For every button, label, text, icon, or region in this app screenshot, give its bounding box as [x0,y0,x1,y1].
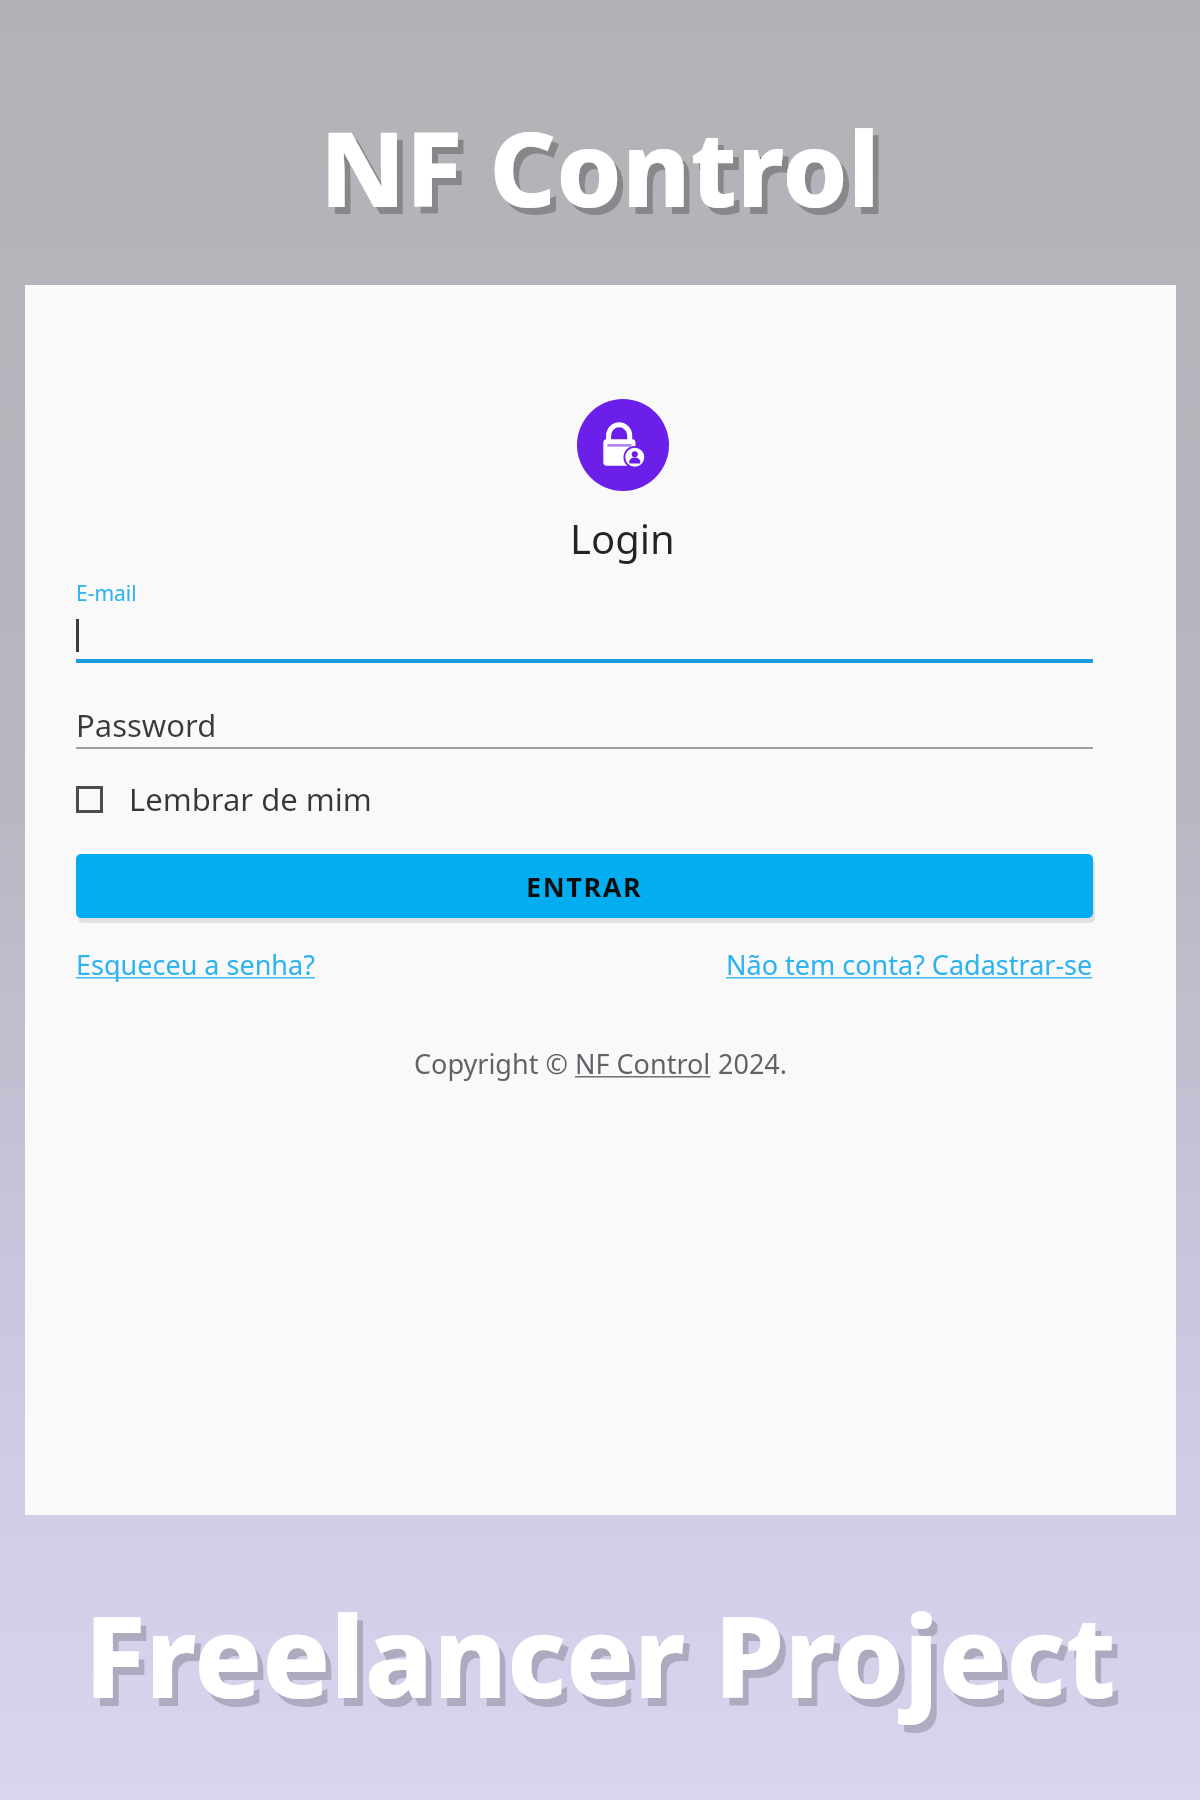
staticText: NF Control [0,96,1200,238]
button[interactable]: NF Control [575,1045,711,1082]
staticText: E-mail [76,579,137,608]
button[interactable]: Esqueceu a senha? [76,946,315,983]
button[interactable] [76,617,1093,659]
other: Account lock [577,399,669,491]
staticText: ENTRAR [526,868,643,905]
button[interactable]: Não tem conta? Cadastrar-se [726,946,1093,983]
staticText: Freelancer Project [0,1578,1200,1731]
staticText: Password [76,704,217,746]
button[interactable]: Lembrar de mim [76,774,372,824]
staticText: Freelancer Project [6,1586,1200,1739]
staticText: NF Control [6,103,1200,245]
button[interactable]: Password [76,703,1093,747]
staticText: Copyright © [414,1045,575,1082]
staticText: Lembrar de mim [129,778,372,820]
staticText: Esqueceu a senha? [76,946,315,983]
staticText: NF Control [575,1045,711,1082]
staticText: Login [570,511,675,565]
staticText: 2024. [711,1045,788,1082]
button[interactable]: ENTRAR [76,854,1093,918]
staticText: Não tem conta? Cadastrar-se [726,946,1093,983]
